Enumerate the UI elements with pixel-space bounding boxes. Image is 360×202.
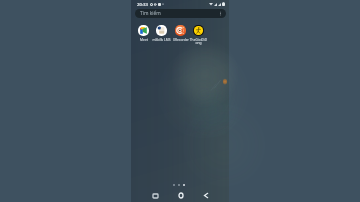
- button[interactable]: Recent apps: [147, 189, 164, 202]
- button[interactable]: Tìm kiếm: [135, 9, 226, 18]
- button[interactable]: Back: [197, 189, 214, 202]
- button[interactable]: TheGioiDiDong: [189, 25, 208, 45]
- staticText: XRecorder: [173, 37, 189, 41]
- button[interactable]: mSkills LMS: [152, 25, 171, 41]
- staticText: 20:33: [137, 1, 148, 7]
- staticText: TheGioiDiDong: [189, 37, 208, 45]
- button[interactable]: More options: [218, 11, 223, 16]
- staticText: Meet: [140, 37, 148, 41]
- button[interactable]: XRecorder: [171, 25, 190, 41]
- button[interactable]: Home: [172, 189, 189, 202]
- staticText: Tìm kiếm: [140, 10, 161, 17]
- button[interactable]: Meet: [134, 25, 153, 41]
- staticText: mSkills LMS: [152, 37, 171, 41]
